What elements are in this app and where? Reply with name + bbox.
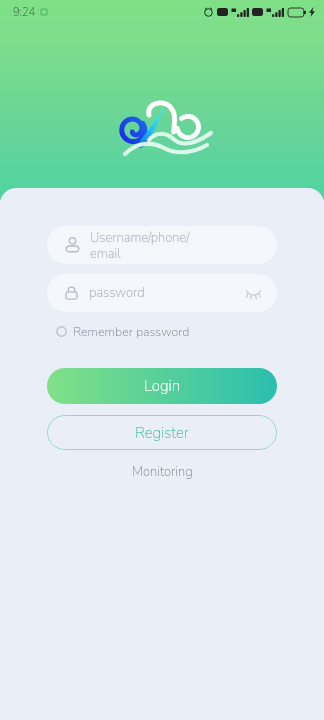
staticText: Login <box>144 376 180 396</box>
other: Show password <box>246 288 261 299</box>
button[interactable]: password <box>47 274 277 312</box>
staticText: Register <box>135 423 189 443</box>
staticText: 9:24 <box>13 5 36 20</box>
staticText: Remember password <box>73 323 190 340</box>
button[interactable]: Username/phone/ email <box>47 226 277 264</box>
button[interactable]: Monitoring <box>122 459 203 485</box>
button[interactable]: Login <box>47 368 277 404</box>
button[interactable]: Remember password <box>53 321 196 342</box>
staticText: Username/phone/ email <box>90 229 190 262</box>
staticText: password <box>89 284 145 302</box>
button[interactable]: Register <box>47 415 277 450</box>
